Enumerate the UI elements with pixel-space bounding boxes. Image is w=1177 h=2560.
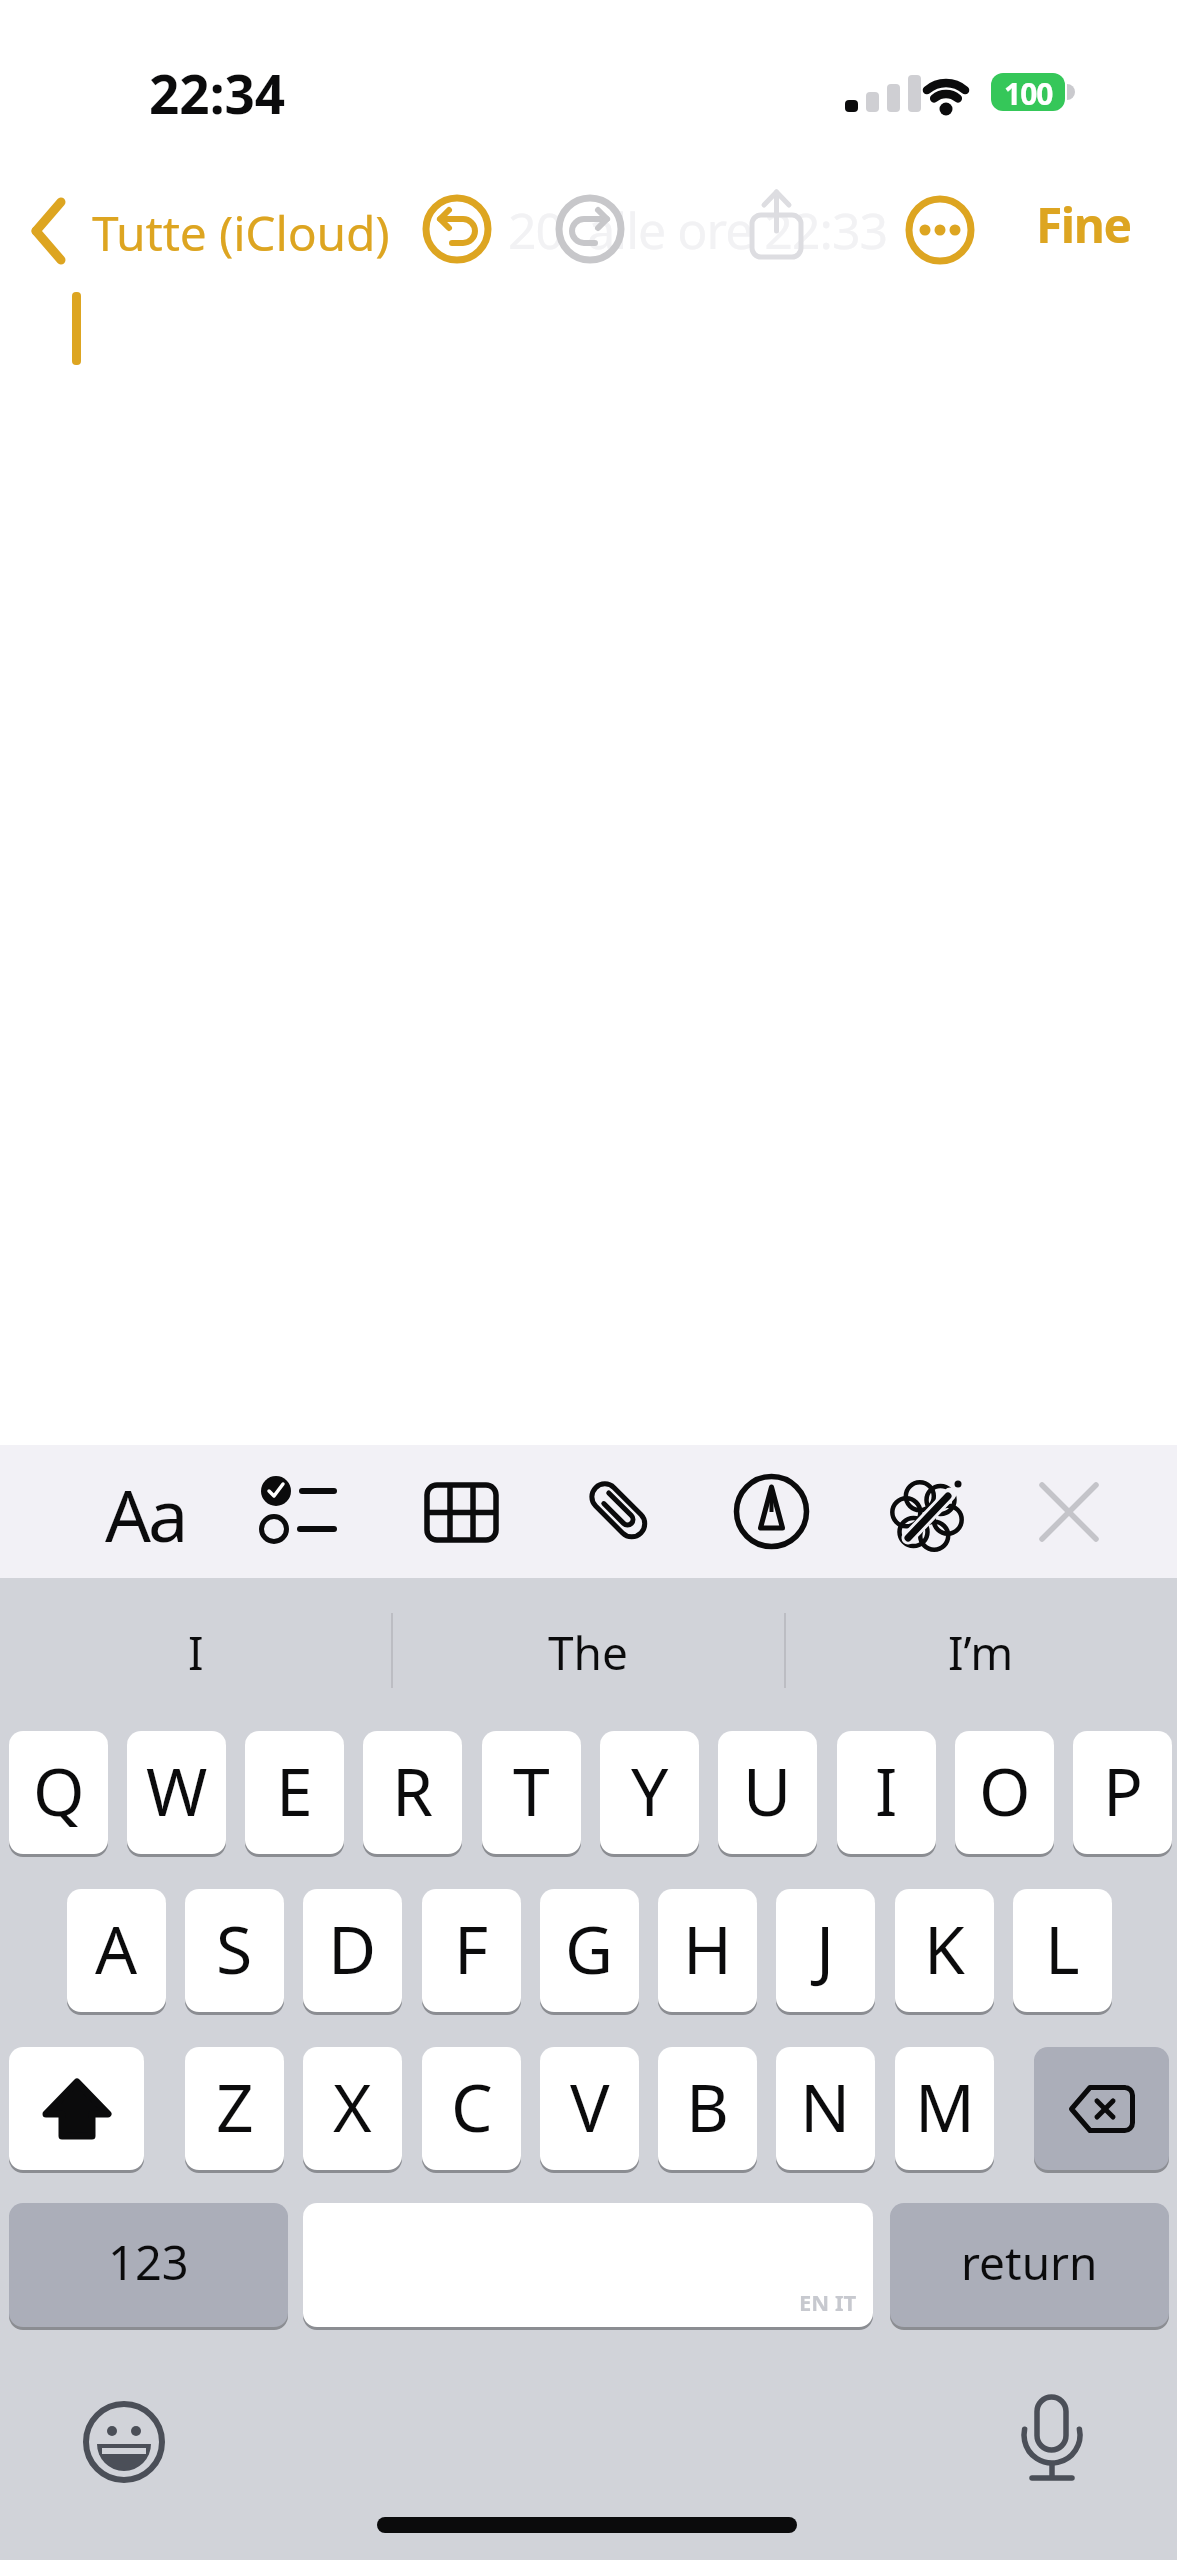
button[interactable] [554,193,626,265]
staticText: Tutte (iCloud) [92,200,390,265]
button[interactable] [586,1477,652,1545]
button[interactable]: Q [9,1731,108,1854]
staticText: 123 [108,2230,189,2294]
button[interactable]: The [392,1598,784,1706]
button[interactable]: A [67,1889,166,2012]
staticText: EN IT [799,2287,857,2317]
staticText: Y [631,1745,669,1835]
button[interactable]: N [776,2047,875,2170]
button[interactable] [424,1482,499,1543]
button[interactable]: EN IT [303,2203,873,2327]
button[interactable]: H [658,1889,757,2012]
button[interactable]: T [482,1731,581,1854]
staticText: V [570,2061,610,2151]
button[interactable]: I [837,1731,936,1854]
button[interactable]: Fine [1036,192,1131,257]
staticText: J [816,1903,835,1993]
button[interactable] [254,1475,340,1547]
button[interactable]: W [127,1731,226,1854]
button[interactable] [905,195,975,265]
button[interactable]: K [895,1889,994,2012]
button[interactable]: return [890,2203,1169,2327]
button[interactable]: R [363,1731,462,1854]
staticText: The [548,1621,628,1684]
staticText: M [915,2061,975,2151]
button[interactable]: S [185,1889,284,2012]
staticText: S [216,1903,253,1993]
button[interactable]: V [540,2047,639,2170]
staticText: return [961,2231,1098,2294]
staticText: P [1103,1745,1143,1835]
button[interactable]: P [1073,1731,1172,1854]
button[interactable]: M [895,2047,994,2170]
button[interactable] [744,188,810,262]
button[interactable] [1034,2047,1169,2170]
button[interactable]: G [540,1889,639,2012]
staticText: N [800,2061,851,2151]
staticText: Q [33,1745,85,1835]
button[interactable] [82,2400,166,2484]
staticText: 22:34 [149,57,286,129]
button[interactable]: L [1013,1889,1112,2012]
staticText: A [95,1903,138,1993]
staticText: H [683,1903,732,1993]
button[interactable]: C [422,2047,521,2170]
button[interactable] [9,2047,144,2170]
button[interactable]: 123 [9,2203,288,2327]
staticText: B [686,2061,729,2151]
button[interactable]: B [658,2047,757,2170]
button[interactable]: X [303,2047,402,2170]
staticText: C [451,2061,493,2151]
staticText: L [1045,1903,1080,1993]
staticText: I [188,1621,204,1684]
button[interactable]: E [245,1731,344,1854]
button[interactable]: O [955,1731,1054,1854]
staticText: Aa [105,1465,186,1557]
staticText: R [392,1745,434,1835]
staticText: G [565,1903,614,1993]
staticText: E [276,1745,313,1835]
button[interactable] [1017,2393,1087,2485]
staticText: I’m [948,1621,1014,1684]
staticText: F [454,1903,489,1993]
button[interactable]: U [718,1731,817,1854]
button[interactable]: F [422,1889,521,2012]
staticText: 20 alle ore 22:33 [508,196,888,264]
staticText: D [328,1903,377,1993]
staticText: X [333,2061,372,2151]
staticText: U [743,1745,792,1835]
button[interactable]: J [776,1889,875,2012]
button[interactable]: Tutte (iCloud) [20,190,410,270]
staticText: I [875,1745,898,1835]
button[interactable]: Aa [95,1465,195,1557]
staticText: O [979,1745,1031,1835]
button[interactable]: D [303,1889,402,2012]
button[interactable] [886,1472,976,1552]
staticText: K [924,1903,965,1993]
staticText: Z [216,2061,254,2151]
staticText: 100 [1004,73,1053,111]
button[interactable]: Y [600,1731,699,1854]
staticText: T [513,1745,550,1835]
button[interactable] [1040,1483,1098,1541]
button[interactable] [734,1474,809,1549]
button[interactable]: I’m [784,1598,1177,1706]
button[interactable]: I [0,1598,392,1706]
staticText: W [146,1745,208,1835]
button[interactable] [421,193,493,265]
button[interactable]: Z [185,2047,284,2170]
